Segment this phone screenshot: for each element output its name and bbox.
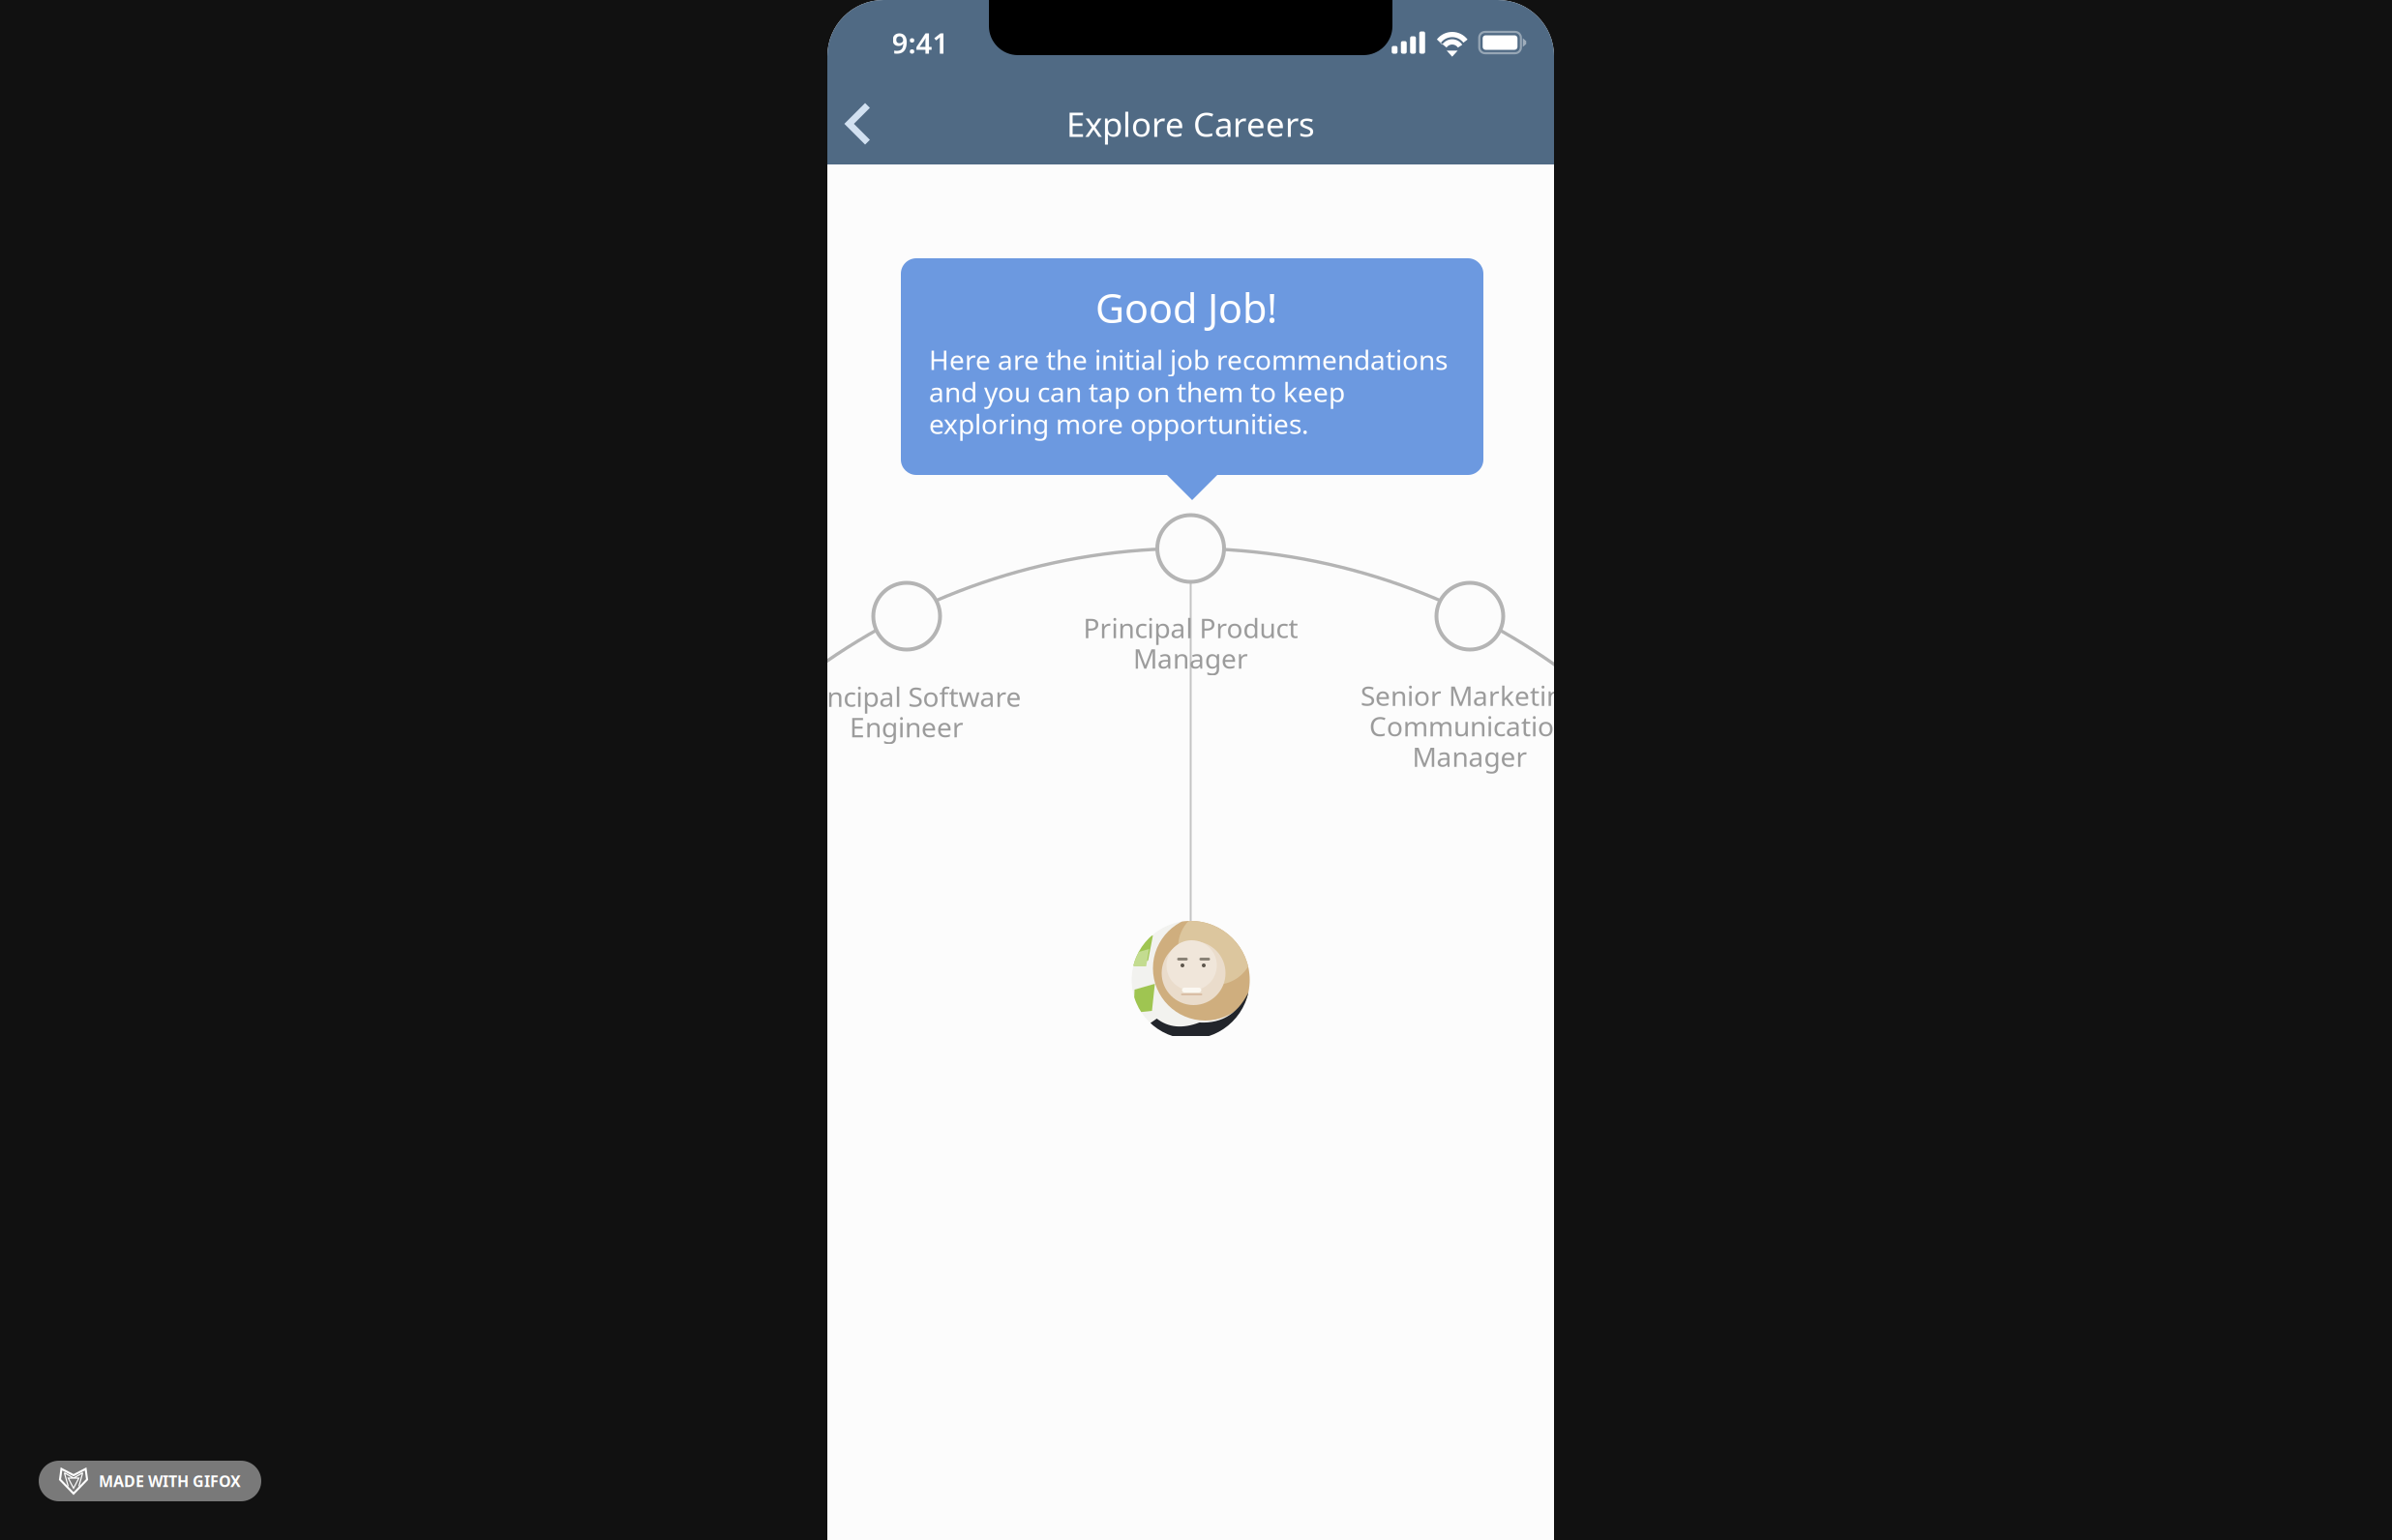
staticText: Communication: [1369, 708, 1570, 744]
staticText: and you can tap on them to keep: [929, 374, 1345, 410]
staticText: Principal Product: [1083, 610, 1298, 646]
staticText: exploring more opportunities.: [929, 406, 1309, 442]
staticText: Senior Marketing: [1360, 678, 1579, 714]
button[interactable]: Principal Software Engineer: [873, 583, 940, 650]
staticText: MADE WITH GIFOX: [99, 1471, 241, 1491]
staticText: 9:41: [892, 24, 949, 61]
button[interactable]: Back: [822, 77, 895, 170]
staticText: Explore Careers: [1066, 102, 1315, 146]
staticText: Manager: [1412, 738, 1527, 774]
staticText: Good Job!: [1095, 281, 1277, 334]
staticText: Here are the initial job recommendations: [929, 341, 1448, 377]
staticText: Principal Software: [792, 678, 1021, 714]
staticText: Manager: [1133, 640, 1248, 676]
button[interactable]: Principal Product Manager: [1157, 515, 1224, 582]
button[interactable]: Senior Marketing Communication Manager: [1436, 583, 1503, 650]
staticText: Engineer: [850, 709, 964, 745]
